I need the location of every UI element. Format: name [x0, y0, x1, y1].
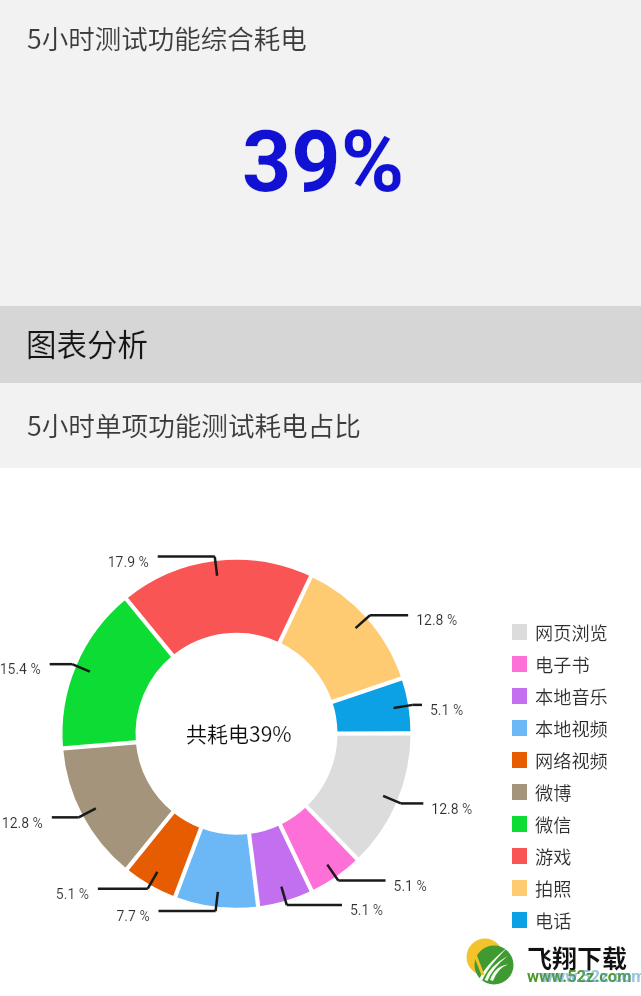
staticText: 微博: [535, 779, 572, 805]
staticText: 5小时测试功能综合耗电: [27, 18, 307, 56]
button[interactable]: 微信: [512, 808, 572, 840]
button[interactable]: 本地视频: [512, 712, 608, 744]
staticText: 网络视频: [535, 747, 608, 773]
button[interactable]: 本地音乐: [512, 680, 608, 712]
staticText: 5小时单项功能测试耗电占比: [27, 405, 361, 444]
staticText: 图表分析: [26, 321, 148, 365]
button[interactable]: Battery usage pie chart: [0, 500, 500, 940]
staticText: 39%: [242, 111, 405, 212]
staticText: 电话: [535, 907, 572, 933]
button[interactable]: 微博: [512, 776, 572, 808]
button[interactable]: 拍照: [512, 872, 572, 904]
button[interactable]: 网页浏览: [512, 616, 608, 648]
button[interactable]: 5小时单项功能测试耗电占比: [0, 383, 641, 468]
staticText: 本地视频: [535, 715, 608, 741]
staticText: 拍照: [535, 875, 572, 901]
staticText: 共耗电39%: [186, 718, 292, 748]
staticText: 电子书: [535, 651, 590, 677]
button[interactable]: 网络视频: [512, 744, 608, 776]
button[interactable]: 5小时测试功能综合耗电: [0, 0, 641, 306]
button[interactable]: 电话: [512, 904, 572, 936]
staticText: 网页浏览: [535, 619, 608, 645]
staticText: 游戏: [535, 843, 572, 869]
staticText: 本地音乐: [535, 683, 608, 709]
button[interactable]: 图表分析: [0, 306, 641, 383]
button[interactable]: 电子书: [512, 648, 590, 680]
staticText: 微信: [535, 811, 572, 837]
button[interactable]: 游戏: [512, 840, 572, 872]
